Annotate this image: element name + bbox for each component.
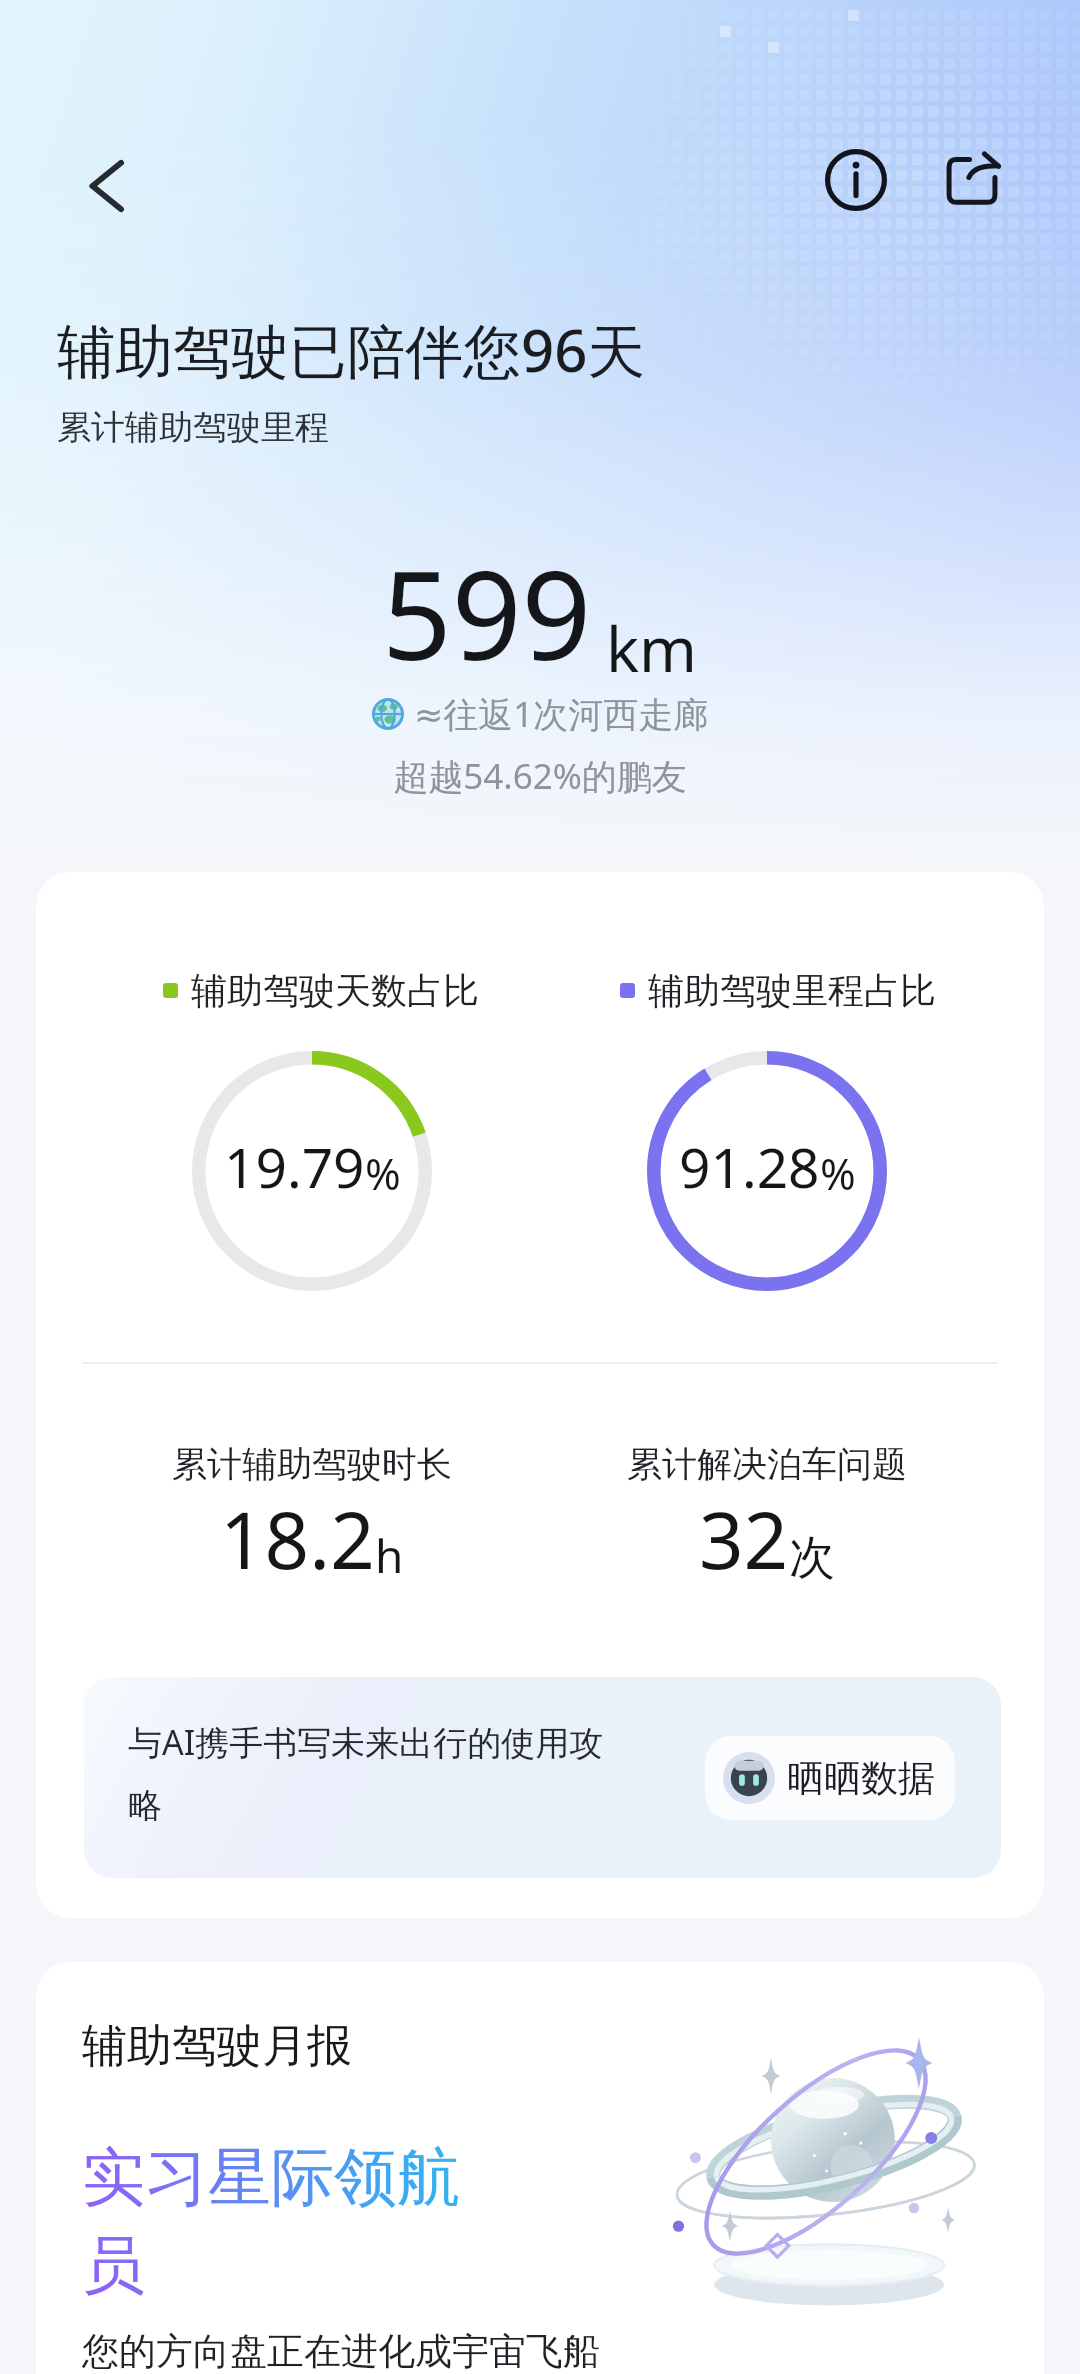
- staticText: 18.2: [220, 1486, 375, 1592]
- staticText: 辅助驾驶天数占比: [191, 968, 479, 1013]
- staticText: 91.28: [679, 1129, 820, 1204]
- staticText: 次: [789, 1529, 835, 1587]
- staticText: %: [365, 1144, 401, 1203]
- staticText: 晒晒数据: [787, 1755, 935, 1802]
- staticText: h: [375, 1524, 404, 1587]
- staticText: 累计辅助驾驶里程: [57, 406, 329, 449]
- staticText: %: [820, 1144, 856, 1203]
- staticText: 32: [699, 1486, 789, 1592]
- staticText: 19.79: [224, 1129, 365, 1204]
- button[interactable]: 晒晒数据: [723, 1736, 955, 1820]
- staticText: 599: [382, 530, 592, 696]
- staticText: 累计辅助驾驶时长: [172, 1442, 452, 1486]
- staticText: 辅助驾驶已陪伴您96天: [57, 310, 646, 389]
- staticText: km: [606, 606, 698, 690]
- staticText: 与AI携手书写未来出行的使用攻略: [128, 1719, 628, 1827]
- staticText: 累计解决泊车问题: [627, 1442, 907, 1486]
- staticText: 实习星际领航员: [82, 2138, 487, 2305]
- staticText: 辅助驾驶里程占比: [648, 968, 936, 1013]
- staticText: 辅助驾驶月报: [82, 2018, 352, 2075]
- staticText: 超越54.62%的鹏友: [0, 752, 1080, 800]
- button[interactable]: Info: [818, 142, 894, 218]
- staticText: 您的方向盘正在进化成宇宙飞船: [82, 2328, 600, 2374]
- button[interactable]: 与AI携手书写未来出行的使用攻略: [84, 1677, 1001, 1878]
- staticText: ≈往返1次河西走廊: [414, 690, 709, 738]
- button[interactable]: Share: [934, 142, 1010, 218]
- button[interactable]: Back: [72, 152, 140, 220]
- button[interactable]: 辅助驾驶月报: [36, 1962, 1044, 2374]
